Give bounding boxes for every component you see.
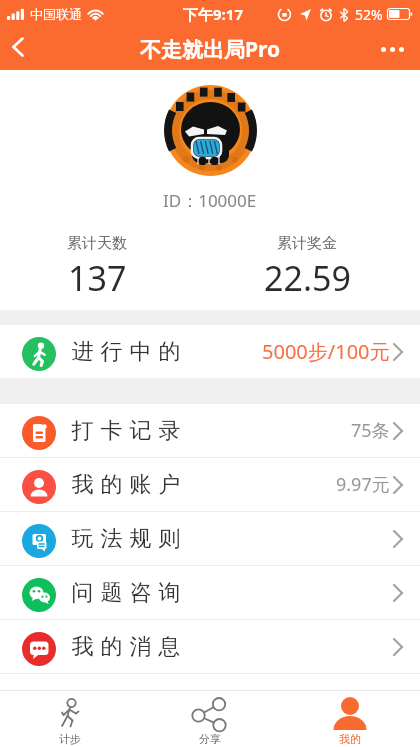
staticText: 137 [68,255,127,301]
staticText: 9.97元 [336,472,390,497]
button[interactable]: 进行中的 [0,325,420,378]
staticText: 22.59 [264,255,351,301]
staticText: 计步 [59,732,81,746]
button[interactable]: 问题咨询 [0,566,420,619]
staticText: 75条 [351,418,390,443]
staticText: 玩法规则 [68,525,184,553]
button[interactable] [381,47,404,52]
staticText: 累计奖金 [277,234,337,253]
staticText: 不走就出局Pro [140,35,281,64]
button[interactable]: 玩法规则 [0,512,420,565]
button[interactable]: 我的账户 [0,458,420,511]
button[interactable]: 打卡记录 [0,404,420,457]
staticText: 我的账户 [68,471,184,499]
staticText: 问题咨询 [68,579,184,607]
staticText: 中国联通 [30,6,82,22]
staticText: 打卡记录 [68,417,184,445]
staticText: 52% [355,5,383,24]
button[interactable]: 计步 [0,691,140,747]
staticText: 进行中的 [68,338,184,366]
staticText: 分享 [199,732,221,746]
staticText: 我的消息 [68,633,184,661]
staticText: 5000步/100元 [262,338,390,365]
staticText: 下午9:17 [183,4,243,24]
button[interactable]: 分享 [140,691,280,747]
staticText: ID：10000E [163,189,257,212]
button[interactable]: 我的 [280,691,420,747]
button[interactable] [0,28,36,70]
staticText: 累计天数 [67,234,127,253]
button[interactable]: 我的消息 [0,620,420,673]
staticText: 我的 [339,732,361,746]
